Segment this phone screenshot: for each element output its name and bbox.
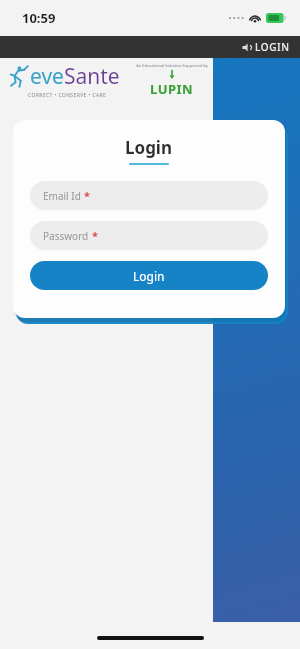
- staticText: eve: [30, 62, 64, 91]
- button[interactable]: Login: [30, 261, 268, 290]
- staticText: Email Id: [43, 189, 81, 203]
- staticText: Sante: [64, 62, 120, 91]
- staticText: An Educational Initiative Supported by: [136, 63, 208, 68]
- staticText: LOGIN: [255, 40, 290, 54]
- other: Login: [242, 43, 251, 52]
- button[interactable]: Login: [232, 37, 300, 57]
- staticText: Login: [125, 136, 173, 159]
- staticText: 10:59: [22, 9, 56, 27]
- staticText: LUPIN: [150, 80, 194, 98]
- button[interactable]: Email Id: [30, 181, 268, 210]
- staticText: *: [84, 188, 90, 203]
- staticText: Password: [43, 229, 89, 243]
- staticText: Login: [133, 268, 165, 284]
- staticText: CORRECT • CONSERVE • CARE: [28, 92, 107, 99]
- staticText: *: [92, 228, 98, 243]
- button[interactable]: Password: [30, 221, 268, 250]
